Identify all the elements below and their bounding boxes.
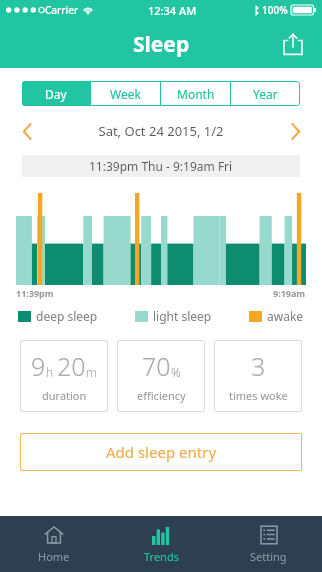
staticText: Week — [110, 86, 141, 102]
staticText: 100% — [262, 3, 288, 17]
button[interactable]: 9 — [20, 340, 108, 412]
staticText: Sat, Oct 24 2015, 1/2 — [39, 122, 283, 140]
staticText: deep sleep — [36, 308, 98, 324]
staticText: 9:19am — [273, 287, 306, 299]
button[interactable]: Previous day — [15, 119, 39, 143]
staticText: m — [86, 364, 97, 380]
button[interactable]: Add sleep entry — [20, 433, 302, 471]
button[interactable]: Next day — [283, 119, 307, 143]
button[interactable]: Day — [22, 81, 90, 106]
staticText: 3 — [251, 349, 266, 383]
staticText: Year — [253, 86, 278, 102]
button[interactable]: Trends — [108, 516, 215, 572]
staticText: Carrier — [45, 3, 79, 17]
staticText: Month — [177, 86, 215, 102]
button[interactable]: Week — [91, 81, 160, 106]
staticText: efficiency — [137, 388, 186, 403]
button[interactable]: Home — [0, 516, 108, 572]
staticText: 11:39pm Thu - 9:19am Fri — [89, 158, 233, 174]
button[interactable]: 3 — [214, 340, 302, 412]
staticText: Sleep — [133, 30, 190, 59]
staticText: Setting — [250, 549, 287, 564]
staticText: awake — [267, 308, 304, 324]
button[interactable]: Share — [273, 24, 313, 64]
staticText: light sleep — [153, 308, 212, 324]
staticText: duration — [42, 388, 87, 403]
staticText: Trends — [144, 549, 179, 564]
staticText: 70 — [142, 349, 171, 383]
button[interactable]: Year — [231, 81, 300, 106]
staticText: % — [171, 364, 181, 380]
staticText: 20 — [57, 349, 86, 383]
staticText: h — [46, 364, 54, 380]
staticText: Home — [38, 549, 70, 564]
staticText: Day — [45, 86, 67, 102]
staticText: 12:34 AM — [148, 3, 197, 18]
staticText: 11:39pm — [16, 287, 54, 299]
staticText: Add sleep entry — [106, 442, 217, 462]
button[interactable]: Setting — [215, 516, 322, 572]
button[interactable]: Month — [161, 81, 230, 106]
staticText: times woke — [229, 388, 288, 403]
button[interactable]: 70 — [117, 340, 205, 412]
staticText: 9 — [31, 349, 46, 383]
